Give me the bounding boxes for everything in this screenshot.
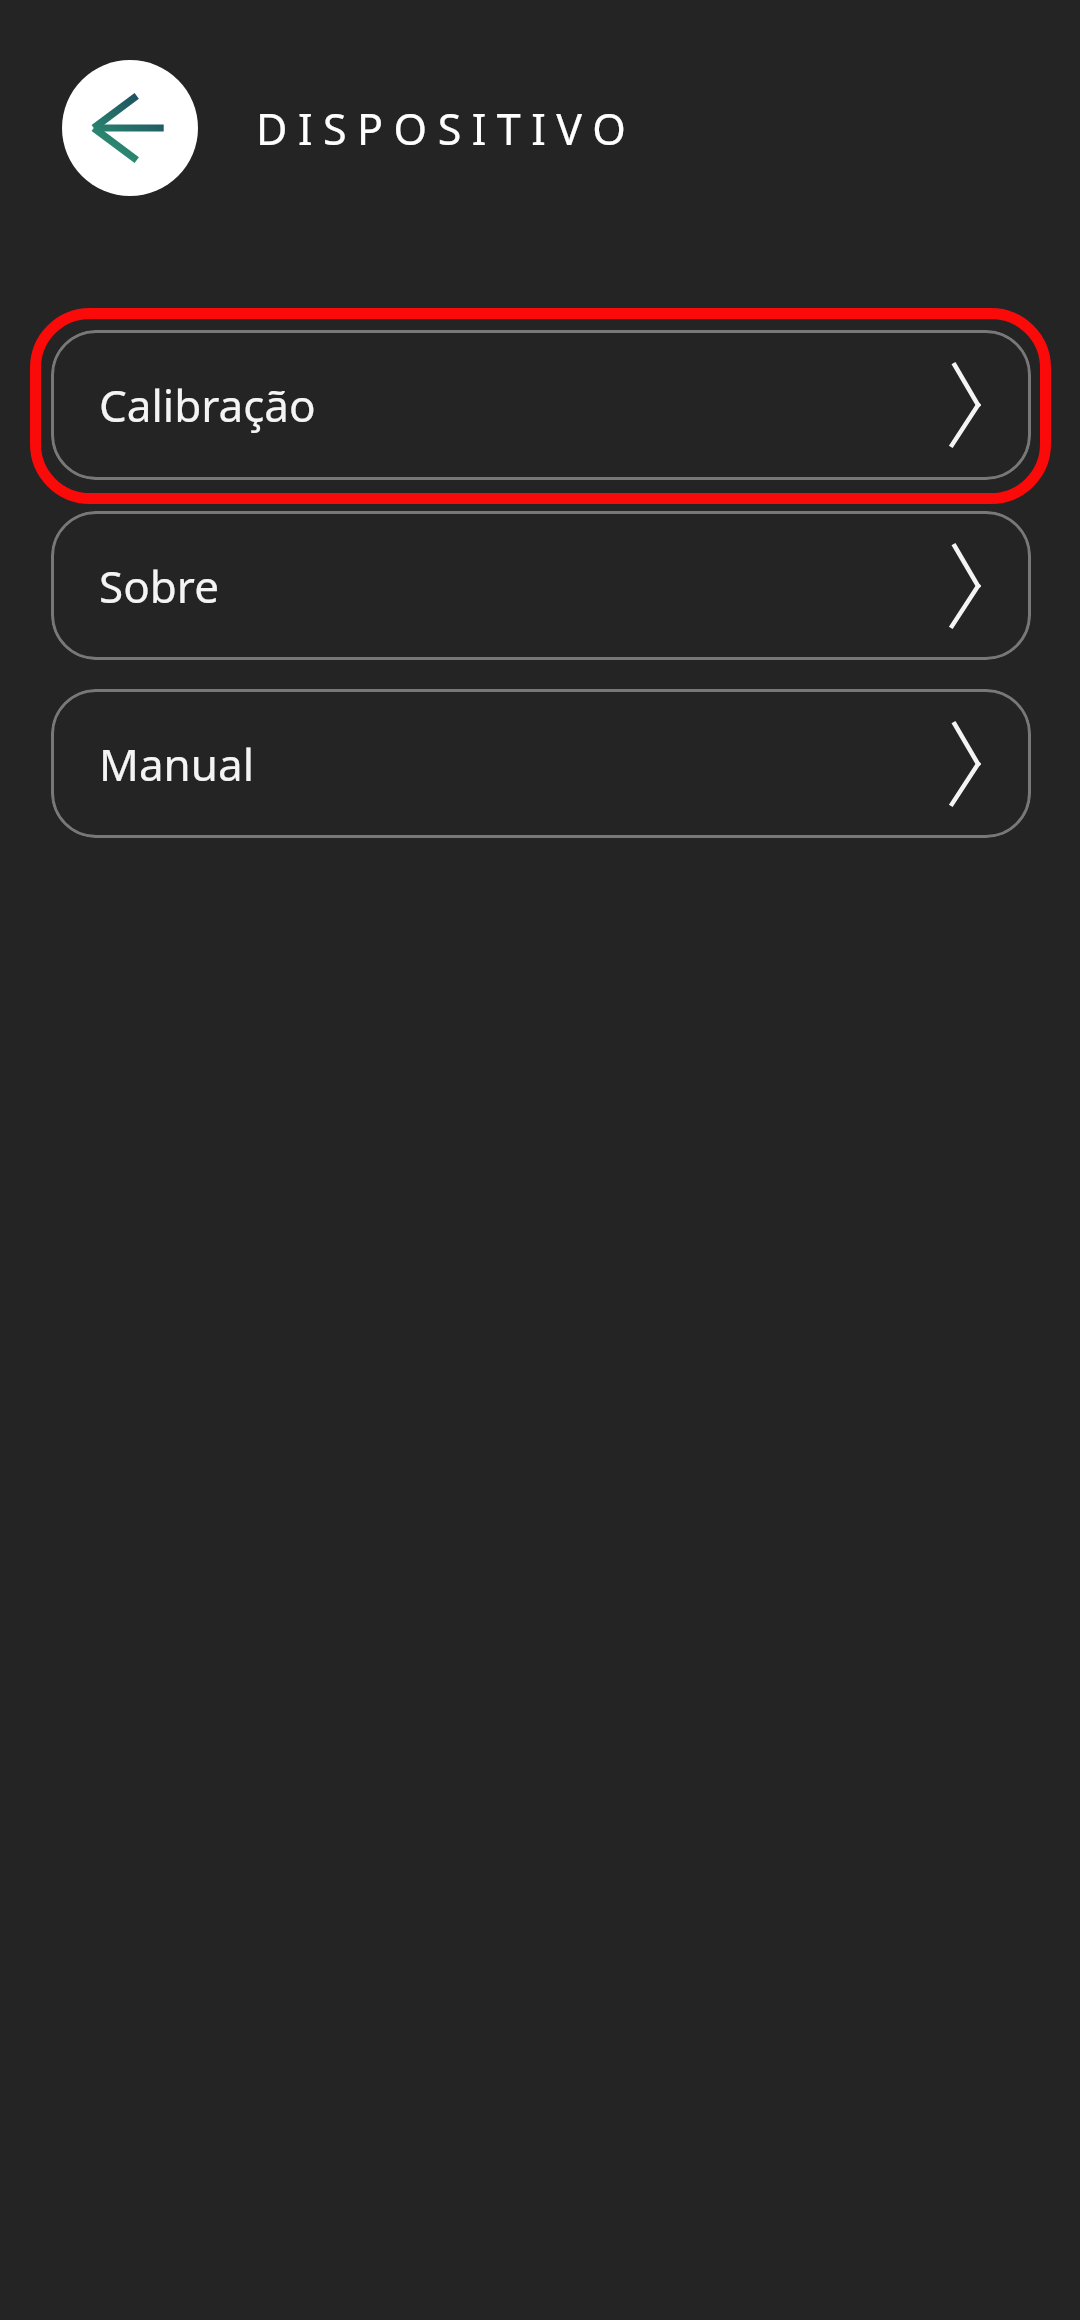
- button[interactable]: Manual: [51, 689, 1031, 838]
- button[interactable]: Voltar: [62, 60, 198, 196]
- staticText: Sobre: [99, 556, 219, 616]
- staticText: Manual: [99, 734, 255, 794]
- button[interactable]: Calibração: [51, 330, 1031, 480]
- staticText: Calibração: [99, 375, 316, 435]
- staticText: DISPOSITIVO: [256, 99, 637, 158]
- button[interactable]: Sobre: [51, 511, 1031, 660]
